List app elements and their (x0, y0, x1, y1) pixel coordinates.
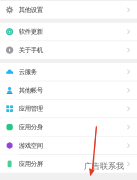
button[interactable]: 云服务 (0, 63, 137, 81)
staticText: 应用分屏 (19, 160, 43, 168)
staticText: 应用管理 (19, 105, 43, 113)
staticText: 关于手机 (19, 46, 43, 54)
button[interactable]: 应用管理 (0, 100, 137, 118)
button[interactable]: 应用分身 (0, 118, 137, 136)
button[interactable]: 应用分屏 (0, 155, 137, 173)
button[interactable]: 软件更新 (0, 23, 137, 41)
staticText: 云服务 (19, 68, 37, 76)
staticText: 软件更新 (19, 28, 43, 36)
button[interactable]: 游戏空间 (0, 137, 137, 154)
staticText: 其他帐号 (19, 86, 43, 94)
staticText: 广告联系我 (84, 161, 124, 171)
button[interactable]: 其他帐号 (0, 81, 137, 99)
button[interactable]: 其他设置 (0, 1, 137, 19)
staticText: 游戏空间 (19, 141, 43, 150)
staticText: 其他设置 (19, 6, 43, 14)
staticText: 应用分身 (19, 123, 43, 131)
button[interactable]: 关于手机 (0, 41, 137, 59)
